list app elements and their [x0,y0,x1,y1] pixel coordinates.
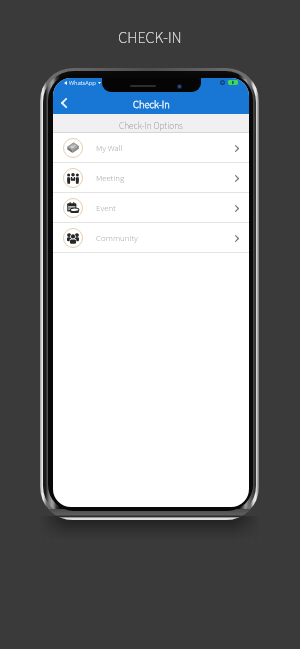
staticText: Check-In Options [119,119,183,132]
staticText: Check-In [133,97,170,112]
button[interactable]: Meeting [53,163,249,192]
button[interactable]: Community [53,223,249,252]
button[interactable]: Back [55,94,73,112]
staticText: Event [96,202,116,215]
button[interactable]: My Wall [53,133,249,162]
button[interactable]: Event [53,193,249,222]
staticText: Community [96,232,138,245]
staticText: WhatsApp [69,78,96,87]
staticText: My Wall [96,142,123,155]
staticText: CHECK-IN [0,27,300,50]
staticText: Meeting [96,172,125,185]
